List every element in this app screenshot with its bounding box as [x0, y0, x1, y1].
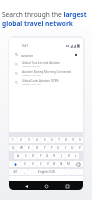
button[interactable]: . — [65, 169, 72, 175]
staticText: 7 — [58, 138, 60, 142]
staticText: Global Tourism and Aviation — [22, 61, 61, 65]
staticText: S — [25, 154, 27, 158]
staticText: E — [28, 146, 30, 150]
staticText: K — [68, 154, 70, 158]
staticText: , — [24, 170, 25, 174]
button[interactable]: T — [41, 145, 48, 151]
button[interactable]: 9 — [69, 137, 76, 143]
button[interactable]: 2 — [17, 137, 25, 143]
staticText: W — [20, 146, 23, 150]
staticText: X — [32, 162, 34, 166]
button[interactable]: !#1 — [9, 169, 21, 175]
staticText: 3 — [28, 138, 30, 142]
button[interactable]: F — [37, 153, 44, 159]
staticText: R — [36, 146, 38, 150]
button[interactable]: 1 — [9, 137, 17, 143]
button[interactable]: Y — [48, 145, 55, 151]
staticText: Q — [12, 146, 15, 150]
button[interactable]: E — [25, 145, 33, 151]
staticText: Global Latin Aviation OPEN — [22, 79, 59, 83]
button[interactable]: Recents — [63, 182, 71, 190]
button[interactable]: X — [29, 161, 37, 167]
staticText: aviation — [21, 53, 34, 57]
button[interactable]: P — [76, 145, 83, 151]
staticText: O — [71, 146, 74, 150]
button[interactable]: Back — [22, 182, 30, 190]
button[interactable]: Home — [42, 182, 50, 190]
button[interactable]: 0 — [76, 137, 83, 143]
staticText: Website, URL, Visit — [22, 83, 41, 86]
button[interactable]: G — [44, 153, 51, 159]
button[interactable]: 3 — [25, 137, 33, 143]
staticText: A — [17, 154, 19, 158]
staticText: . — [68, 170, 69, 174]
button[interactable]: S — [22, 153, 30, 159]
other: Search — [15, 53, 18, 56]
button[interactable]: R — [33, 145, 41, 151]
button[interactable]: M — [65, 161, 72, 167]
staticText: Y — [51, 146, 53, 150]
staticText: I — [65, 146, 67, 150]
staticText: Search through the largest global travel… — [2, 10, 90, 28]
staticText: J — [61, 154, 62, 158]
button[interactable]: Global Tourism and Aviation — [15, 60, 78, 69]
staticText: F — [40, 154, 42, 158]
button[interactable]: English (US) — [28, 169, 65, 175]
staticText: 9:41 — [22, 44, 28, 48]
staticText: 9 — [72, 138, 74, 142]
staticText: Website, URL, Info — [22, 74, 41, 77]
staticText: N — [60, 162, 63, 166]
staticText: Website, URL, City — [22, 65, 41, 68]
button[interactable]: U — [55, 145, 62, 151]
staticText: 6 — [51, 138, 53, 142]
staticText: T — [44, 146, 46, 150]
button[interactable]: C — [37, 161, 44, 167]
staticText: Z — [24, 162, 26, 166]
button[interactable]: K — [65, 153, 72, 159]
button[interactable]: Backspace — [72, 161, 83, 167]
staticText: U — [57, 146, 60, 150]
button[interactable]: 5 — [41, 137, 48, 143]
button[interactable]: H — [51, 153, 58, 159]
button[interactable]: A — [14, 153, 22, 159]
staticText: V — [47, 162, 49, 166]
staticText: 8 — [65, 138, 67, 142]
staticText: B — [53, 162, 56, 166]
button[interactable]: 7 — [55, 137, 62, 143]
button[interactable]: N — [58, 161, 65, 167]
staticText: 0 — [79, 138, 81, 142]
button[interactable]: B — [51, 161, 58, 167]
button[interactable]: , — [21, 169, 28, 175]
staticText: L — [75, 154, 77, 158]
staticText: 4 — [36, 138, 38, 142]
button[interactable]: L — [72, 153, 79, 159]
button[interactable]: I — [62, 145, 69, 151]
button[interactable]: Global Latin Aviation OPEN — [15, 78, 78, 87]
button[interactable]: W — [17, 145, 25, 151]
staticText: D — [32, 154, 35, 158]
staticText: M — [67, 162, 70, 166]
button[interactable]: J — [58, 153, 65, 159]
button[interactable]: 4 — [33, 137, 41, 143]
button[interactable]: O — [69, 145, 76, 151]
button[interactable]: Shift — [9, 161, 21, 167]
button[interactable]: V — [44, 161, 51, 167]
staticText: !#1 — [13, 170, 18, 174]
staticText: English (US) — [38, 170, 56, 174]
staticText: G — [46, 154, 49, 158]
button[interactable]: Aviation Boeing Morning Connected — [15, 69, 78, 78]
staticText: P — [79, 146, 81, 150]
button[interactable]: Z — [21, 161, 29, 167]
staticText: Aviation Boeing Morning Connected — [22, 70, 72, 74]
button[interactable]: Q — [9, 145, 17, 151]
staticText: 2 — [20, 138, 22, 142]
staticText: H — [53, 154, 56, 158]
button[interactable]: Search — [15, 50, 77, 59]
button[interactable]: 8 — [62, 137, 69, 143]
staticText: C — [40, 162, 42, 166]
staticText: 5 — [44, 138, 46, 142]
button[interactable]: 6 — [48, 137, 55, 143]
button[interactable]: D — [30, 153, 37, 159]
